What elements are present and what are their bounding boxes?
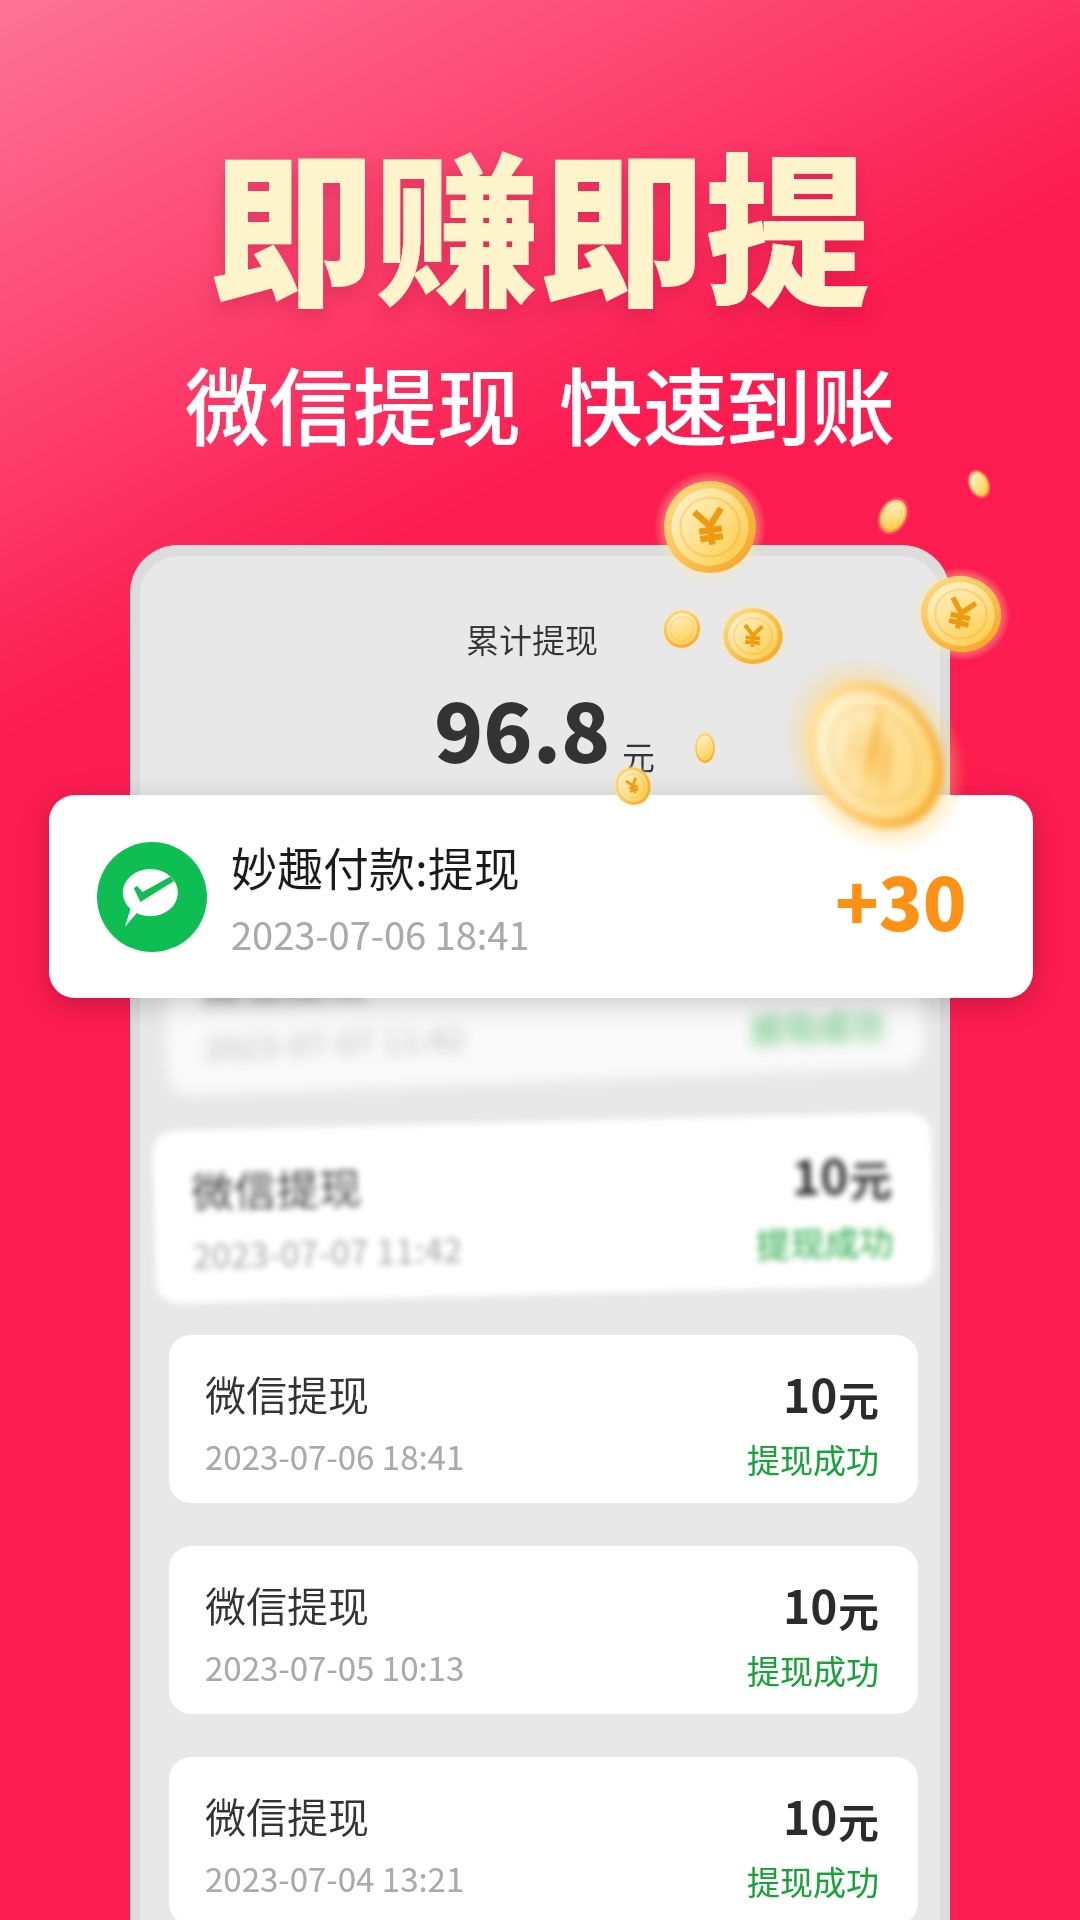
button[interactable]: WeChat payment xyxy=(49,795,1033,998)
staticText: 微信提现 xyxy=(205,1574,369,1633)
staticText: 提现成功 xyxy=(749,1000,885,1053)
staticText: 10 xyxy=(783,1571,838,1638)
button[interactable]: 微信提现 xyxy=(152,1112,935,1304)
staticText: 微信提现 xyxy=(205,1785,369,1844)
staticText: 2023-07-07 11:42 xyxy=(192,1223,463,1279)
staticText: 提现成功 xyxy=(755,1216,894,1269)
staticText: 微信提现 xyxy=(200,948,367,1013)
staticText: 元 xyxy=(838,1579,879,1638)
staticText: 10 xyxy=(783,1782,838,1849)
staticText: 2023-07-06 18:41 xyxy=(231,906,530,961)
button[interactable]: 微信提现 xyxy=(169,1546,918,1714)
staticText: 累计提现 xyxy=(140,615,932,663)
staticText: 元 xyxy=(848,1147,892,1209)
staticText: 提现成功 xyxy=(747,1435,879,1483)
staticText: 妙趣付款:提现 xyxy=(231,833,520,900)
staticText: 微信提现 xyxy=(190,1155,362,1220)
staticText: 微信提现 快速到账 xyxy=(0,342,1080,464)
staticText: 元 xyxy=(622,732,655,780)
staticText: 2023-07-06 18:41 xyxy=(205,1432,465,1480)
staticText: +30 xyxy=(835,847,967,951)
staticText: 2023-07-05 10:13 xyxy=(205,1643,465,1691)
button[interactable]: 微信提现 xyxy=(169,1335,918,1503)
staticText: 2023-07-04 13:21 xyxy=(205,1854,465,1902)
staticText: 96.8 xyxy=(434,669,611,786)
staticText: 2023-07-07 11:42 xyxy=(202,1013,467,1071)
other: WeChat payment xyxy=(97,842,207,952)
staticText: 即赚即提 xyxy=(0,102,1080,341)
button[interactable]: 微信提现 xyxy=(169,1757,918,1920)
staticText: 元 xyxy=(838,1368,879,1427)
staticText: 10 xyxy=(791,1140,850,1210)
staticText: 10 xyxy=(783,1360,838,1427)
staticText: 微信提现 xyxy=(205,1363,369,1422)
staticText: 提现成功 xyxy=(747,1646,879,1694)
staticText: 元 xyxy=(838,1790,879,1849)
staticText: 提现成功 xyxy=(747,1857,879,1905)
button[interactable]: 微信提现 xyxy=(162,898,925,1095)
